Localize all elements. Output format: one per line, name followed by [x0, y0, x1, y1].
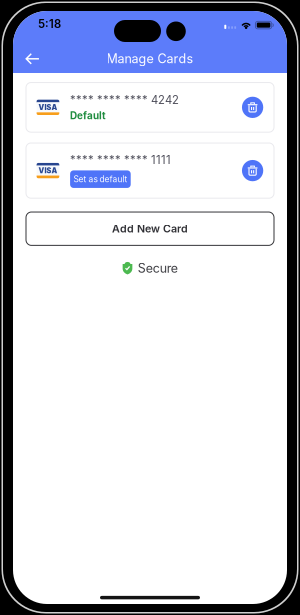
staticText: Secure — [138, 261, 178, 276]
staticText: **** **** **** 1111 — [70, 153, 171, 167]
button[interactable]: Back — [17, 44, 49, 74]
staticText: VISA — [38, 166, 57, 175]
staticText: Set as default — [73, 174, 127, 184]
button[interactable]: Delete card — [241, 159, 265, 183]
staticText: VISA — [38, 103, 57, 112]
button[interactable]: Set as default — [70, 170, 131, 188]
staticText: **** **** **** 4242 — [70, 93, 179, 107]
button[interactable]: Delete card — [241, 95, 265, 119]
button[interactable]: Add New Card — [26, 212, 274, 245]
staticText: 5:18 — [38, 17, 61, 31]
staticText: Add New Card — [112, 222, 188, 235]
staticText: Default — [70, 110, 106, 122]
staticText: Manage Cards — [106, 51, 193, 66]
